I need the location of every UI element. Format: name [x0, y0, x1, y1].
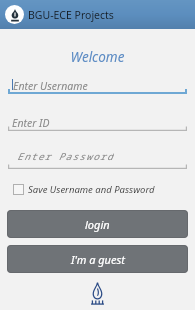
- button[interactable]: BGU-ECE Projects: [0, 0, 195, 29]
- button[interactable]: Enter Password: [8, 150, 187, 169]
- staticText: BGU-ECE Projects: [28, 8, 114, 22]
- button[interactable]: Save Username and Password: [13, 183, 155, 196]
- button[interactable]: login: [7, 210, 188, 238]
- staticText: Enter ID: [12, 116, 50, 127]
- staticText: Save Username and Password: [28, 183, 155, 196]
- staticText: Enter Password: [17, 150, 114, 161]
- button[interactable]: Enter ID: [8, 116, 187, 131]
- staticText: I'm a guest: [71, 252, 125, 267]
- staticText: login: [85, 217, 110, 232]
- button[interactable]: I'm a guest: [7, 245, 188, 273]
- button[interactable]: Enter Username: [8, 79, 187, 94]
- staticText: Enter Username: [13, 79, 88, 90]
- staticText: Welcome: [0, 48, 195, 66]
